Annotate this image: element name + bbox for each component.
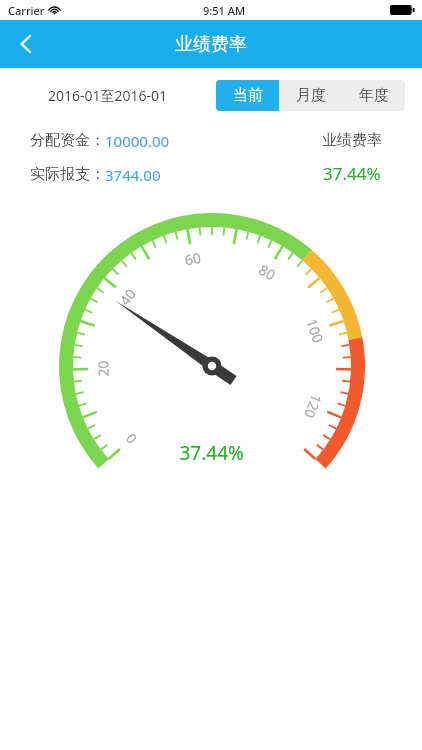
staticText: 37.44%: [323, 162, 381, 185]
button[interactable]: 当前: [216, 80, 279, 111]
staticText: 10000.00: [105, 131, 170, 151]
staticText: 3744.00: [105, 165, 161, 185]
staticText: 当前: [233, 86, 263, 105]
staticText: 2016-01至2016-01: [48, 86, 168, 105]
staticText: 业绩费率: [175, 33, 247, 56]
button[interactable]: 月度: [279, 80, 342, 111]
button[interactable]: Back: [0, 20, 52, 68]
staticText: 9:51 AM: [203, 3, 246, 18]
staticText: 月度: [296, 86, 326, 105]
staticText: 分配资金：: [30, 131, 105, 150]
staticText: 年度: [359, 86, 389, 105]
staticText: Carrier: [8, 3, 45, 18]
staticText: 实际报支：: [30, 165, 105, 184]
button[interactable]: 年度: [342, 80, 405, 111]
staticText: 业绩费率: [322, 131, 382, 150]
